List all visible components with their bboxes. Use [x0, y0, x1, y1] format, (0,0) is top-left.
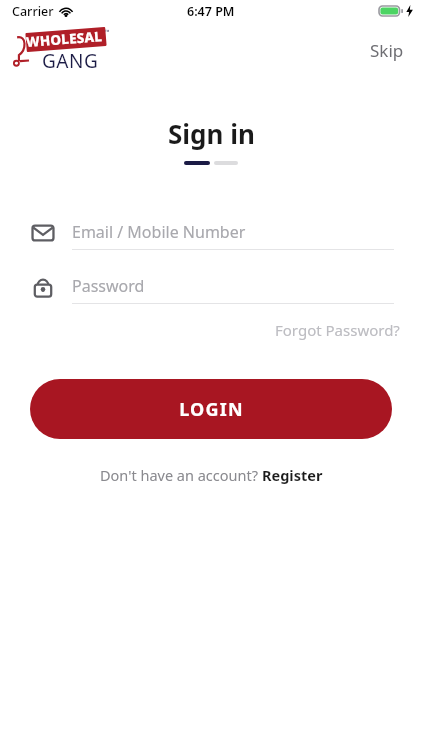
button[interactable]: Forgot Password?	[265, 316, 422, 344]
staticText: Register	[262, 465, 323, 485]
button[interactable]: Wholesale Gang logo	[10, 28, 114, 72]
button[interactable]: Skip	[352, 31, 422, 70]
button[interactable]: LOGIN	[30, 379, 392, 439]
button[interactable]: Email / Mobile Number	[28, 215, 394, 250]
staticText: Sign in	[168, 116, 255, 151]
staticText: Don't have an account?	[100, 465, 262, 485]
button[interactable]: Register	[262, 465, 323, 485]
staticText: Email / Mobile Number	[72, 221, 246, 243]
staticText: LOGIN	[179, 397, 244, 422]
staticText: Forgot Password?	[275, 320, 400, 340]
staticText: GANG	[42, 48, 99, 74]
button[interactable]: Sign in tab	[184, 161, 210, 165]
button[interactable]: Password	[28, 269, 394, 304]
staticText: 6:47 PM	[187, 3, 235, 20]
staticText: WHOLESALE	[25, 27, 107, 52]
staticText: Carrier	[12, 3, 54, 20]
staticText: ™	[105, 28, 110, 36]
staticText: Skip	[370, 39, 404, 62]
button[interactable]: Sign up tab	[214, 161, 238, 165]
staticText: Password	[72, 275, 145, 297]
